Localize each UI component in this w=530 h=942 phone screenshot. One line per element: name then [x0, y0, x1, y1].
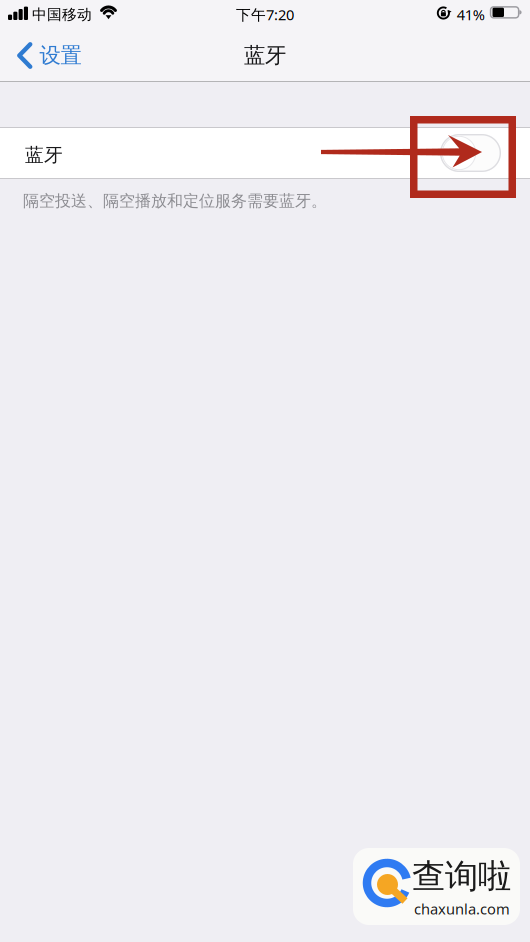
staticText: 隔空投送、隔空播放和定位服务需要蓝牙。 [23, 191, 327, 211]
button[interactable]: 设置 [0, 29, 91, 82]
staticText: 蓝牙 [244, 42, 286, 69]
button[interactable]: 蓝牙 [0, 127, 530, 179]
staticText: chaxunla.com [414, 899, 510, 918]
staticText: 中国移动 [32, 5, 92, 23]
staticText: 蓝牙 [25, 143, 63, 166]
staticText: 查询啦 [412, 856, 511, 897]
staticText: 下午7:20 [236, 5, 294, 24]
staticText: 41% [457, 5, 485, 24]
staticText: 设置 [39, 42, 81, 69]
